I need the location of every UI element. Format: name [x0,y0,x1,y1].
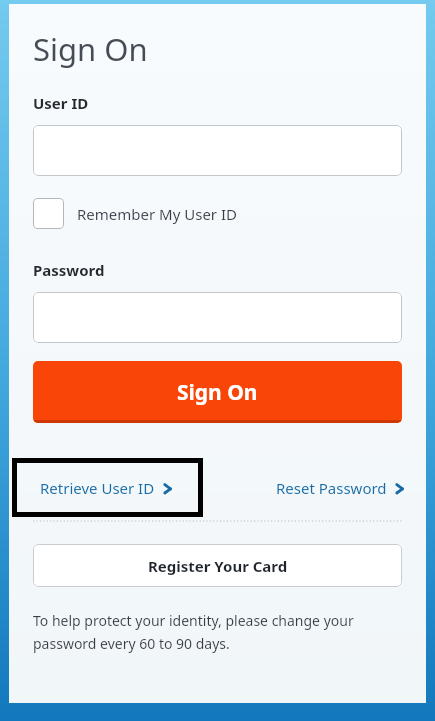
staticText: Sign On [177,378,258,407]
button[interactable]: Sign On [33,361,402,423]
staticText: Retrieve User ID [40,478,155,498]
button[interactable]: User ID input [33,125,402,176]
button[interactable]: Password input [33,292,402,343]
staticText: Remember My User ID [77,204,237,224]
button[interactable]: Register Your Card [33,544,402,587]
staticText: To help protect your identity, please ch… [33,611,354,653]
button[interactable]: Remember My User ID [33,198,237,229]
button[interactable]: Reset Password [276,478,407,498]
button[interactable]: Retrieve User ID [12,458,203,517]
staticText: Sign On [33,28,148,70]
staticText: Register Your Card [148,556,288,576]
staticText: User ID [33,93,89,113]
staticText: Reset Password [276,478,387,498]
staticText: Password [33,260,105,280]
